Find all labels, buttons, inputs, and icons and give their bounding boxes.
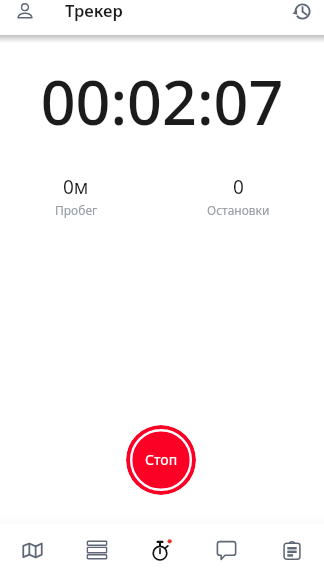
- staticText: Пробег: [55, 202, 98, 218]
- staticText: 0: [233, 174, 244, 200]
- button[interactable]: Стоп: [126, 425, 196, 495]
- staticText: 0м: [63, 174, 89, 200]
- staticText: Трекер: [65, 0, 123, 21]
- staticText: Остановки: [207, 202, 270, 218]
- button[interactable]: Chat: [194, 524, 259, 576]
- button[interactable]: Tracker: [129, 524, 194, 576]
- button[interactable]: List: [64, 524, 129, 576]
- button[interactable]: Profile: [17, 3, 33, 19]
- button[interactable]: Notes: [259, 524, 324, 576]
- staticText: 00:02:07: [0, 60, 324, 143]
- staticText: Стоп: [145, 450, 178, 469]
- button[interactable]: History: [292, 2, 311, 21]
- button[interactable]: Map: [0, 524, 64, 576]
